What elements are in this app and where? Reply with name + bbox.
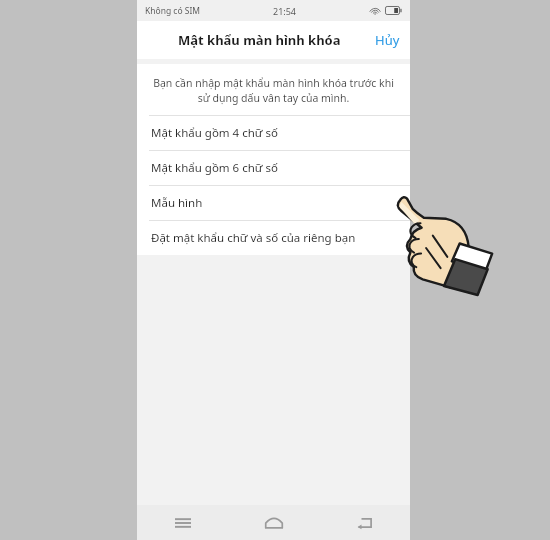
staticText: 21:54 bbox=[273, 5, 297, 17]
staticText: Mẫu hình bbox=[151, 195, 203, 211]
staticText: Không có SIM bbox=[145, 5, 201, 17]
button[interactable]: Back bbox=[319, 505, 410, 540]
staticText: Bạn cần nhập mật khẩu màn hình khóa trướ… bbox=[151, 76, 396, 105]
button[interactable]: Đặt mật khẩu chữ và số của riêng bạn bbox=[137, 221, 410, 255]
button[interactable]: Home bbox=[228, 505, 319, 540]
staticText: Mật khẩu màn hình khóa bbox=[178, 31, 341, 49]
button[interactable]: Hủy bbox=[365, 23, 410, 57]
staticText: Mật khẩu gồm 4 chữ số bbox=[151, 125, 278, 141]
button[interactable]: Mật khẩu gồm 6 chữ số bbox=[137, 151, 410, 185]
button[interactable]: Menu bbox=[137, 505, 228, 540]
button[interactable]: Mẫu hình bbox=[137, 186, 410, 220]
staticText: Hủy bbox=[375, 31, 400, 49]
button[interactable]: Mật khẩu gồm 4 chữ số bbox=[137, 116, 410, 150]
staticText: Đặt mật khẩu chữ và số của riêng bạn bbox=[151, 230, 356, 246]
staticText: Mật khẩu gồm 6 chữ số bbox=[151, 160, 278, 176]
